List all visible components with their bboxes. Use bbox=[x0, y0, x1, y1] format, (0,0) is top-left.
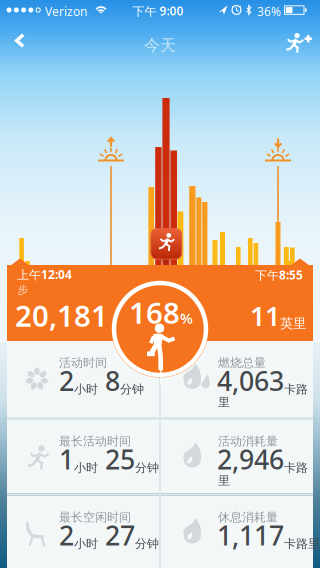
staticText: 上午12:04 bbox=[17, 266, 72, 282]
button[interactable]: Log activity bbox=[280, 31, 314, 61]
staticText: 1,117卡路里 bbox=[217, 517, 320, 553]
staticText: 2小时 27分钟 bbox=[59, 517, 159, 553]
staticText: 20,181 bbox=[15, 296, 108, 335]
staticText: 活动时间 bbox=[59, 355, 107, 370]
staticText: 燃烧总量 bbox=[218, 355, 266, 370]
staticText: 最长活动时间 bbox=[59, 434, 131, 449]
staticText: 活动消耗量 bbox=[218, 434, 278, 449]
staticText: 1小时 25分钟 bbox=[59, 441, 159, 477]
button[interactable]: 燃烧总量 bbox=[161, 341, 313, 417]
staticText: 里 bbox=[218, 473, 230, 488]
staticText: 2,946卡路 bbox=[217, 441, 308, 477]
button[interactable]: 休息消耗量 bbox=[161, 495, 313, 568]
staticText: 最长空闲时间 bbox=[59, 510, 131, 525]
staticText: 今天 bbox=[144, 35, 176, 55]
staticText: Verizon bbox=[45, 3, 87, 19]
staticText: 步 bbox=[17, 283, 28, 297]
staticText: 2小时 8分钟 bbox=[59, 363, 144, 398]
staticText: 下午 9:00 bbox=[132, 3, 183, 19]
button[interactable]: 最长空闲时间 bbox=[7, 495, 159, 568]
staticText: 4,063卡路 bbox=[217, 363, 308, 398]
button[interactable]: 最长活动时间 bbox=[7, 419, 159, 493]
button[interactable]: 活动时间 bbox=[7, 341, 159, 417]
staticText: 里 bbox=[218, 395, 230, 410]
staticText: 168% bbox=[129, 293, 193, 332]
button[interactable]: Back bbox=[0, 20, 40, 64]
staticText: 11英里 bbox=[250, 298, 306, 333]
staticText: 36% bbox=[257, 3, 281, 19]
button[interactable]: 活动消耗量 bbox=[161, 419, 313, 493]
staticText: 下午8:55 bbox=[255, 267, 303, 283]
staticText: 休息消耗量 bbox=[218, 510, 278, 525]
